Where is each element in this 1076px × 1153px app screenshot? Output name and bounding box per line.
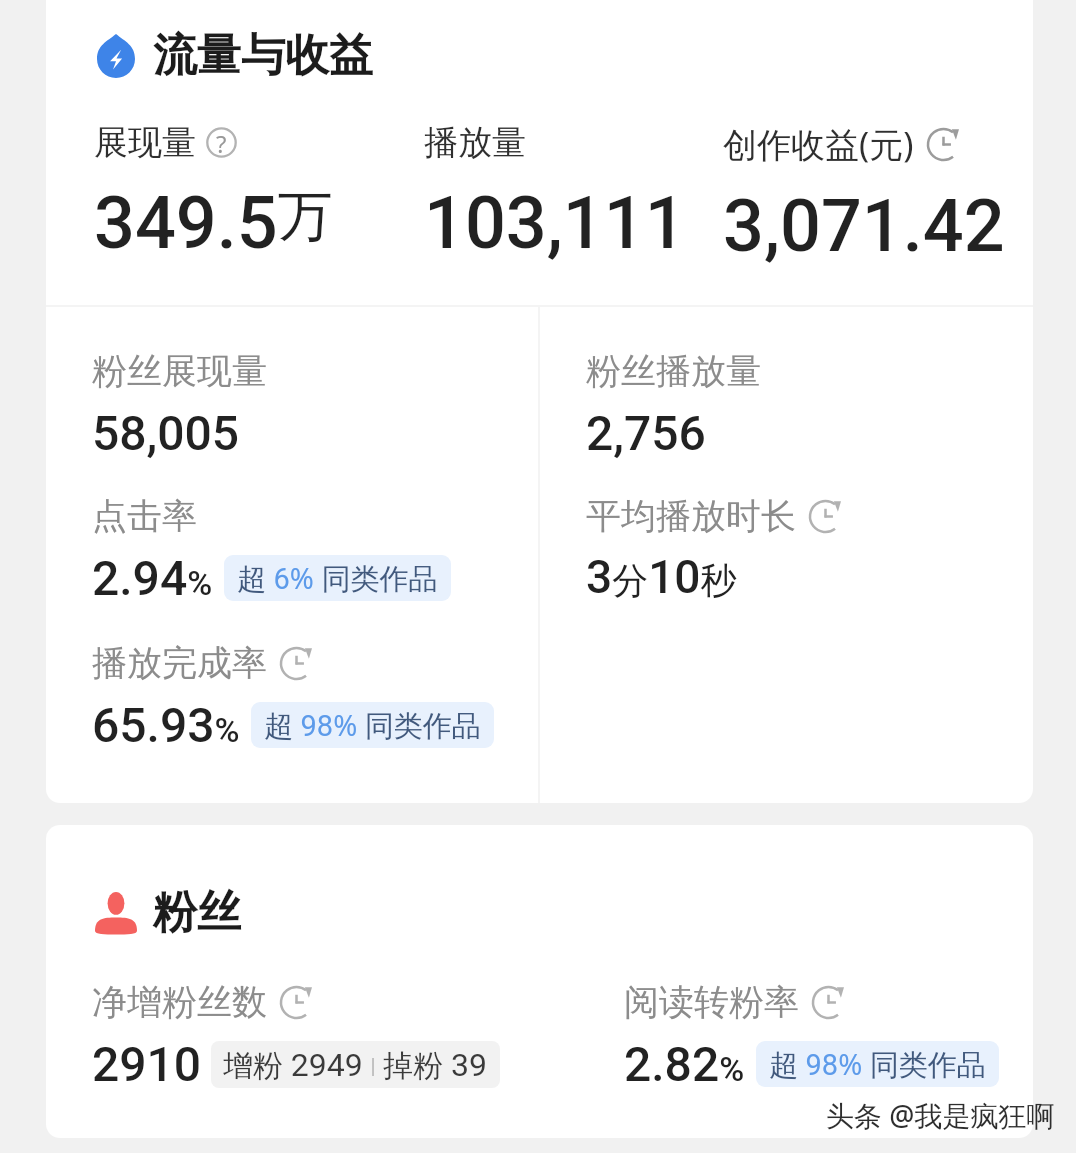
button[interactable]: 增粉 2949 ǀ 掉粉 39 [211,1041,500,1088]
staticText: 65.93% [92,697,240,753]
other: 数据更新说明 [279,646,314,681]
button[interactable]: 流量与收益 [97,28,373,83]
staticText: 展现量 [94,121,196,164]
other: 说明 [206,127,237,158]
other: 数据更新说明 [811,985,846,1020]
button[interactable]: 净增粉丝数 [92,980,500,1092]
button[interactable]: 阅读转粉率 [624,980,999,1092]
staticText: 2.94% [92,550,213,606]
other: 数据更新说明 [279,985,314,1020]
staticText: 2,756 [586,405,706,461]
button[interactable]: 粉丝播放量 [586,349,761,461]
staticText: 阅读转粉率 [624,980,799,1024]
staticText: 流量与收益 [153,28,373,83]
staticText: 粉丝 [153,885,241,940]
other: 数据更新说明 [926,127,961,162]
other: 数据更新说明 [808,499,843,534]
staticText: 2910 [92,1036,202,1092]
other: 流量与收益 [97,34,135,78]
button[interactable]: 粉丝 [95,885,241,940]
staticText: 3分10秒 [586,550,737,604]
staticText: 超 98% 同类作品 [264,705,481,745]
staticText: 净增粉丝数 [92,980,267,1024]
button[interactable]: 播放完成率 [92,641,494,753]
button[interactable]: 粉丝展现量 [92,349,267,461]
staticText: 增粉 2949 ǀ 掉粉 39 [223,1044,488,1085]
staticText: 2.82% [624,1036,745,1092]
staticText: 头条 @我是疯狂啊 [826,1096,1055,1134]
staticText: 平均播放时长 [586,494,796,538]
button[interactable]: 超 98% 同类作品 [251,702,494,748]
staticText: 58,005 [92,405,240,461]
staticText: 103,111 [424,181,686,265]
button[interactable]: 播放量 [424,121,723,265]
button[interactable]: 创作收益(元) [723,121,1023,268]
button[interactable]: 超 6% 同类作品 [224,555,451,601]
other: 粉丝 [95,891,137,935]
staticText: 播放完成率 [92,641,267,685]
staticText: 超 6% 同类作品 [237,558,438,598]
staticText: 超 98% 同类作品 [769,1044,986,1084]
button[interactable]: 平均播放时长 [586,494,843,604]
staticText: ? [216,127,227,158]
staticText: 粉丝播放量 [586,349,761,393]
button[interactable]: 展现量 [94,121,424,265]
button[interactable]: 点击率 [92,494,451,606]
staticText: 3,071.42 [723,184,1005,268]
button[interactable]: 超 98% 同类作品 [756,1041,999,1087]
staticText: 349.5万 [94,181,333,265]
staticText: 点击率 [92,494,197,538]
staticText: 粉丝展现量 [92,349,267,393]
staticText: 创作收益(元) [723,121,914,167]
staticText: 播放量 [424,121,526,164]
